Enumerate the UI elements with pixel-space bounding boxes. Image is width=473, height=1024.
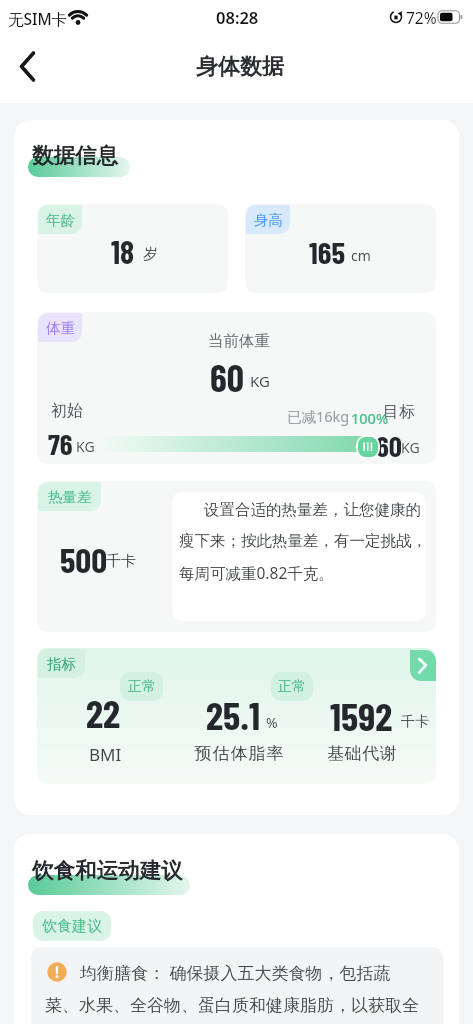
button[interactable]: 饮食建议 bbox=[33, 911, 111, 941]
staticText: 60 bbox=[376, 428, 402, 463]
button[interactable]: 正常 bbox=[120, 672, 163, 701]
staticText: 初始 bbox=[51, 401, 83, 421]
staticText: % bbox=[266, 713, 278, 732]
button[interactable]: 体重 bbox=[38, 313, 82, 342]
staticText: KG bbox=[401, 438, 420, 457]
staticText: 1592 bbox=[330, 692, 393, 739]
staticText: 身高 bbox=[254, 211, 283, 229]
staticText: 指标 bbox=[47, 655, 76, 673]
staticText: 目标 bbox=[383, 402, 415, 422]
staticText: 身体数据 bbox=[196, 53, 284, 81]
button[interactable] bbox=[410, 650, 436, 681]
button[interactable]: 指标 bbox=[38, 649, 85, 678]
staticText: 当前体重 bbox=[208, 331, 270, 351]
button[interactable]: 热量差 bbox=[38, 482, 101, 511]
staticText: KG bbox=[250, 371, 270, 391]
staticText: 岁 bbox=[143, 245, 158, 264]
staticText: 年龄 bbox=[46, 211, 75, 229]
button[interactable]: 正常 bbox=[271, 672, 313, 701]
staticText: 100% bbox=[351, 408, 389, 428]
staticText: 165 bbox=[309, 233, 346, 270]
staticText: 体重 bbox=[46, 319, 75, 337]
button[interactable] bbox=[37, 648, 436, 784]
staticText: 数据信息 bbox=[32, 142, 118, 169]
staticText: 千卡 bbox=[106, 552, 136, 571]
staticText: 每周可减重0.82千克。 bbox=[179, 562, 334, 583]
staticText: 正常 bbox=[128, 678, 156, 696]
button[interactable] bbox=[37, 204, 228, 293]
staticText: 500 bbox=[60, 538, 108, 580]
staticText: 72% bbox=[406, 7, 437, 28]
staticText: KG bbox=[76, 437, 95, 456]
staticText: 22 bbox=[86, 689, 121, 736]
staticText: 正常 bbox=[278, 678, 306, 696]
staticText: 均衡膳食： 确保摄入五大类食物，包括蔬 bbox=[80, 961, 391, 984]
staticText: 瘦下来；按此热量差，有一定挑战， bbox=[179, 531, 427, 551]
staticText: 60 bbox=[210, 354, 244, 400]
button[interactable]: 年龄 bbox=[38, 205, 82, 234]
staticText: 饮食和运动建议 bbox=[32, 857, 183, 884]
staticText: cm bbox=[351, 246, 371, 265]
staticText: 25.1 bbox=[206, 691, 260, 738]
staticText: 08:28 bbox=[216, 6, 259, 28]
staticText: 已减16kg bbox=[287, 406, 350, 426]
staticText: 设置合适的热量差，让您健康的 bbox=[204, 500, 421, 520]
button[interactable] bbox=[37, 312, 436, 464]
staticText: 无SIM卡 bbox=[8, 8, 68, 29]
button[interactable]: 身高 bbox=[246, 205, 290, 234]
staticText: 预估体脂率 bbox=[194, 743, 284, 764]
staticText: 热量差 bbox=[48, 488, 92, 506]
staticText: 千卡 bbox=[401, 713, 429, 731]
staticText: BMI bbox=[89, 743, 122, 766]
staticText: 基础代谢 bbox=[327, 743, 397, 764]
button[interactable] bbox=[245, 204, 436, 293]
button[interactable] bbox=[8, 52, 48, 82]
staticText: 18 bbox=[111, 232, 135, 270]
button[interactable] bbox=[37, 481, 436, 632]
staticText: 饮食建议 bbox=[42, 917, 102, 936]
staticText: 菜、水果、全谷物、蛋白质和健康脂肪，以获取全 bbox=[45, 995, 419, 1016]
staticText: 76 bbox=[48, 426, 73, 461]
